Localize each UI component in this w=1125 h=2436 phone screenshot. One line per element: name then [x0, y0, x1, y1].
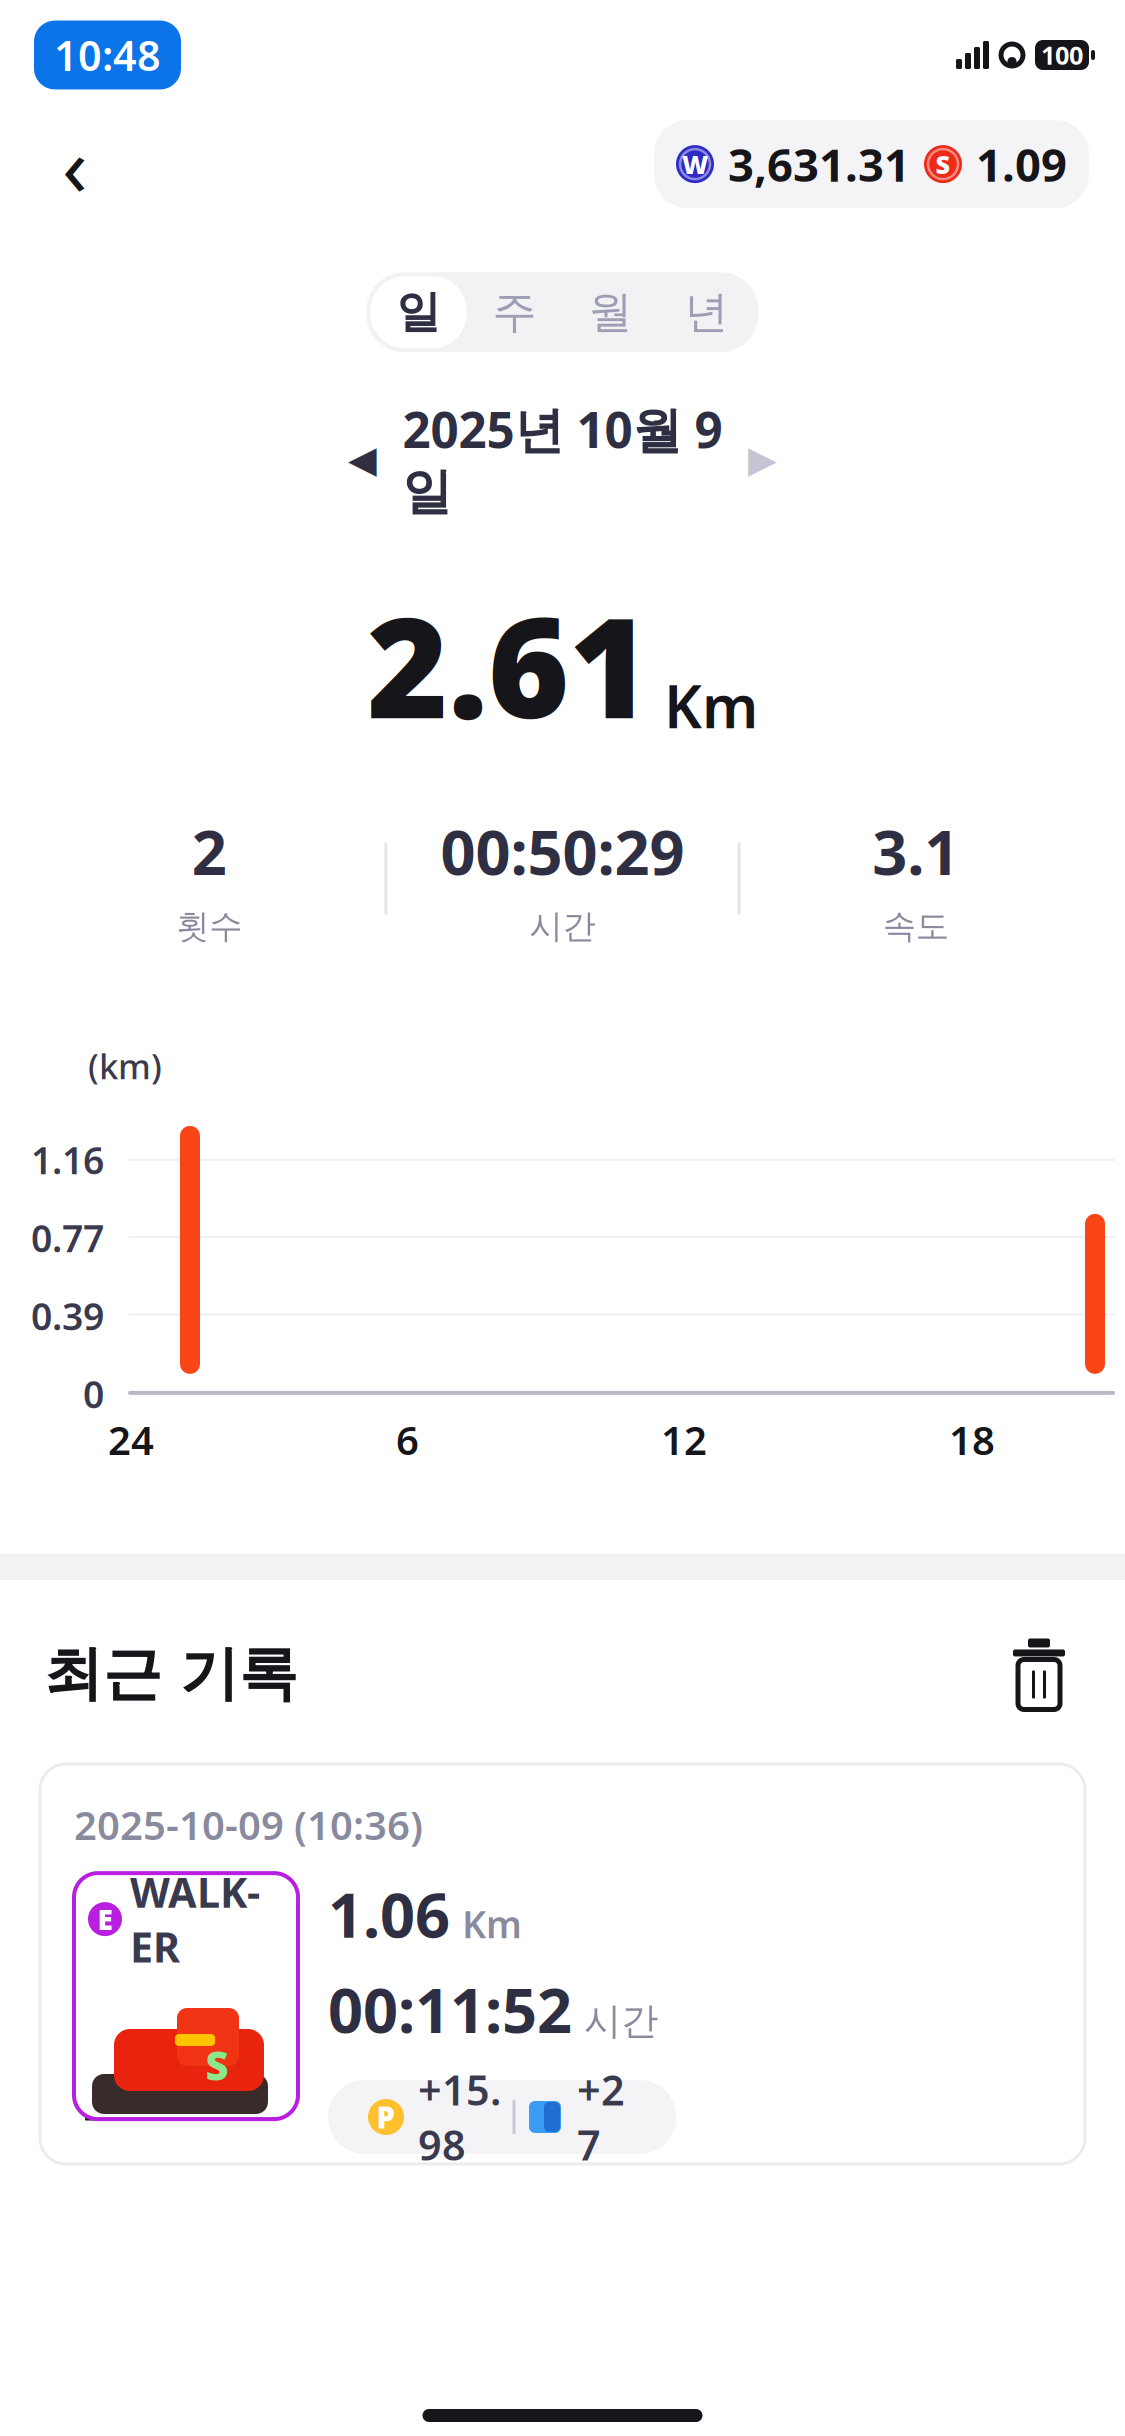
- staticText: 주: [492, 285, 536, 339]
- staticText: 속도: [883, 906, 949, 947]
- staticText: 00:11:52: [328, 1969, 572, 2050]
- staticText: 횟수: [176, 906, 242, 947]
- staticText: 24: [108, 1413, 154, 1466]
- staticText: ▶: [748, 438, 777, 480]
- staticText: 12: [661, 1413, 707, 1466]
- staticText: 0.77: [31, 1213, 104, 1263]
- staticText: 0.39: [31, 1291, 104, 1341]
- staticText: +27: [577, 2062, 625, 2172]
- staticText: 3,631.31: [728, 134, 910, 194]
- staticText: 10:48: [54, 28, 161, 82]
- staticText: +15.98: [418, 2062, 501, 2172]
- button[interactable]: 일: [370, 276, 466, 348]
- staticText: 2: [192, 810, 227, 892]
- staticText: Km: [664, 666, 758, 744]
- staticText: 시간: [529, 906, 595, 947]
- staticText: Km: [462, 1899, 522, 1949]
- staticText: 1.16: [31, 1135, 104, 1185]
- staticText: 최근 기록: [44, 1638, 298, 1710]
- staticText: 년: [684, 285, 728, 339]
- staticText: 6: [396, 1413, 419, 1466]
- staticText: ‹: [62, 109, 88, 219]
- staticText: WALKER: [130, 1864, 260, 1974]
- staticText: 18: [949, 1413, 995, 1466]
- staticText: 2025-10-09 (10:36): [74, 1798, 423, 1851]
- staticText: 2.61: [367, 572, 650, 756]
- button[interactable]: 월: [562, 276, 658, 348]
- staticText: 시간: [584, 1998, 658, 2044]
- button[interactable]: Delete records: [997, 1632, 1081, 1716]
- staticText: 3.1: [872, 810, 959, 892]
- staticText: 00:50:29: [440, 810, 684, 892]
- staticText: S: [205, 2038, 228, 2091]
- staticText: S: [935, 147, 950, 181]
- button[interactable]: Back: [40, 124, 110, 204]
- staticText: (km): [88, 1043, 162, 1089]
- staticText: 월: [588, 285, 632, 339]
- staticText: ◀: [348, 438, 377, 480]
- staticText: 1.06: [328, 1873, 450, 1954]
- staticText: 일: [396, 285, 440, 339]
- staticText: 0: [83, 1369, 104, 1419]
- staticText: P: [376, 2097, 395, 2136]
- button[interactable]: Next day: [727, 427, 797, 491]
- button[interactable]: Previous day: [327, 427, 397, 491]
- button[interactable]: 주: [466, 276, 562, 348]
- staticText: 2025년 10월 9일: [402, 396, 722, 522]
- staticText: 100: [1041, 38, 1083, 72]
- button[interactable]: 2025-10-09 (10:36): [40, 1764, 1085, 2164]
- button[interactable]: 년: [658, 276, 754, 348]
- button[interactable]: W: [654, 120, 1089, 208]
- staticText: W: [682, 147, 708, 181]
- staticText: E: [97, 1900, 112, 1938]
- staticText: 1.09: [976, 134, 1067, 194]
